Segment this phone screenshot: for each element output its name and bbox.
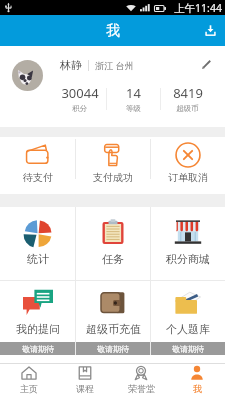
staticText: 超级币 <box>176 104 199 113</box>
staticText: 我 <box>106 22 120 40</box>
button[interactable]: 课程 <box>57 364 113 400</box>
staticText: 统计 <box>27 252 49 266</box>
staticText: 待支付 <box>23 171 53 184</box>
button[interactable] <box>12 60 43 91</box>
staticText: 我的提问 <box>16 322 60 336</box>
button[interactable]: 8419 <box>161 82 214 115</box>
button[interactable]: 我的提问 <box>0 281 75 355</box>
button[interactable]: 支付成功 <box>76 137 150 194</box>
button[interactable]: Edit profile <box>195 53 217 75</box>
staticText: 14 <box>126 84 141 102</box>
staticText: 积分 <box>72 104 87 113</box>
button[interactable]: 待支付 <box>0 137 75 194</box>
button[interactable]: 30044 <box>53 82 106 115</box>
button[interactable]: 主页 <box>0 364 57 400</box>
staticText: 积分商城 <box>166 252 210 266</box>
button[interactable]: 14 <box>107 82 160 115</box>
staticText: 课程 <box>76 383 94 394</box>
staticText: 任务 <box>102 252 124 266</box>
staticText: 等级 <box>126 104 141 113</box>
staticText: 订单取消 <box>168 171 208 184</box>
staticText: 浙江 台州 <box>95 59 134 71</box>
button[interactable]: 积分商城 <box>151 207 225 280</box>
staticText: 主页 <box>20 383 38 394</box>
button[interactable]: 订单取消 <box>151 137 225 194</box>
button[interactable]: 荣誉堂 <box>113 364 169 400</box>
staticText: 敬请期待 <box>22 344 54 354</box>
button[interactable]: 任务 <box>76 207 150 280</box>
staticText: 林静 <box>60 58 82 72</box>
staticText: 我 <box>193 383 202 394</box>
staticText: 支付成功 <box>93 171 133 184</box>
staticText: 上午11:44 <box>174 1 222 15</box>
staticText: 敬请期待 <box>172 344 204 354</box>
button[interactable]: 个人题库 <box>151 281 225 355</box>
staticText: 超级币充值 <box>86 322 141 336</box>
staticText: 个人题库 <box>166 322 210 336</box>
staticText: 8419 <box>173 84 203 102</box>
button[interactable]: Download <box>195 15 225 46</box>
button[interactable]: 统计 <box>0 207 75 280</box>
staticText: 敬请期待 <box>97 344 129 354</box>
staticText: 荣誉堂 <box>128 383 155 394</box>
button[interactable]: 超级币充值 <box>76 281 150 355</box>
staticText: 30044 <box>61 84 99 102</box>
button[interactable]: 我 <box>169 364 225 400</box>
